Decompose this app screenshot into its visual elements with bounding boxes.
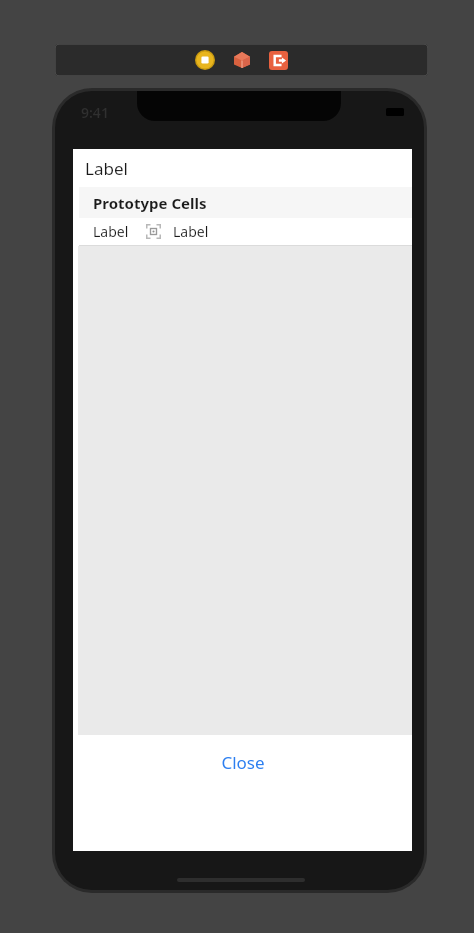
button[interactable]: Pause execution <box>195 50 215 70</box>
button[interactable]: Export <box>269 51 288 70</box>
staticText: Label <box>93 222 129 241</box>
staticText: Label <box>85 157 128 180</box>
staticText: Close <box>221 751 265 774</box>
staticText: Prototype Cells <box>93 193 207 213</box>
staticText: 9:41 <box>81 103 109 122</box>
button[interactable]: Debug view hierarchy <box>232 50 252 70</box>
staticText: Label <box>173 222 209 241</box>
button[interactable]: Label <box>79 218 412 245</box>
button[interactable]: Close <box>73 735 412 790</box>
